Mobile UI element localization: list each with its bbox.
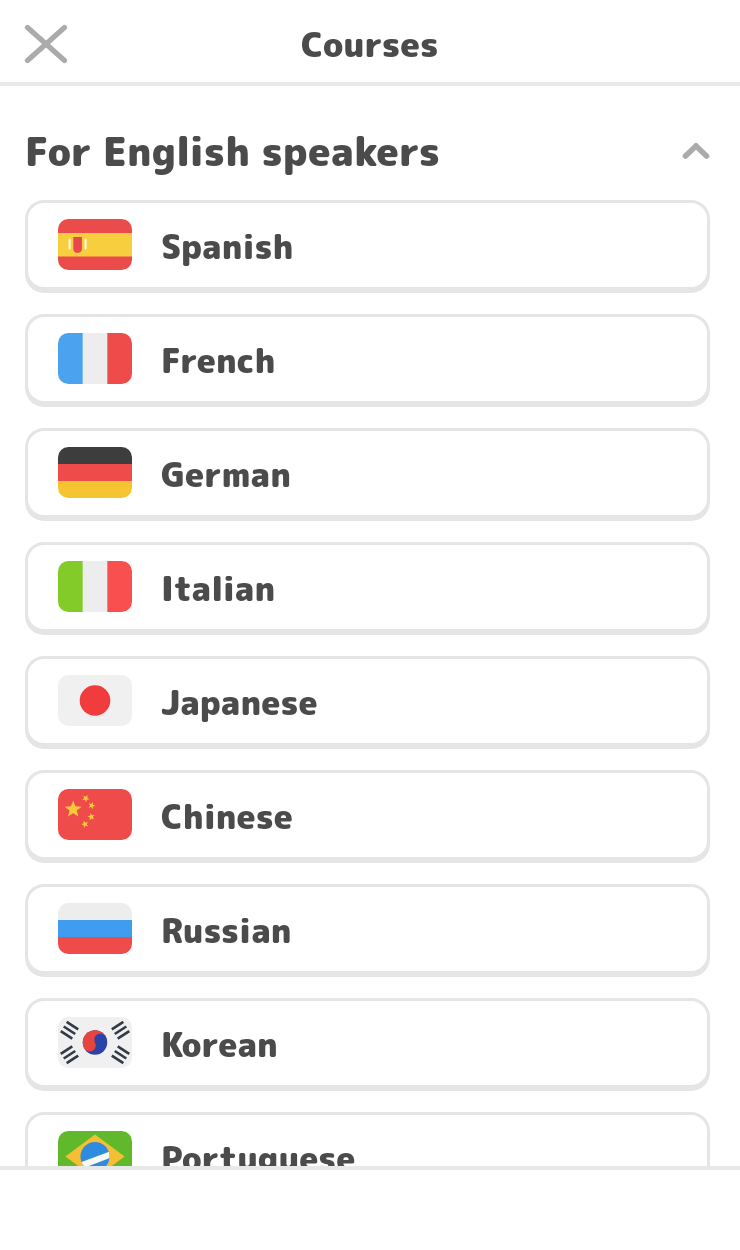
- button[interactable]: German: [25, 428, 710, 521]
- staticText: French: [161, 338, 276, 384]
- button[interactable]: Italian: [25, 542, 710, 635]
- staticText: Spanish: [161, 224, 294, 270]
- staticText: Italian: [161, 566, 276, 612]
- staticText: Korean: [161, 1022, 278, 1068]
- other: Collapse section: [674, 129, 718, 173]
- button[interactable]: Russian: [25, 884, 710, 977]
- staticText: Japanese: [161, 680, 318, 726]
- staticText: Courses: [301, 20, 439, 67]
- staticText: German: [161, 452, 292, 498]
- staticText: Chinese: [161, 794, 293, 840]
- button[interactable]: Close: [12, 9, 80, 77]
- button[interactable]: Japanese: [25, 656, 710, 749]
- button[interactable]: Spanish: [25, 200, 710, 293]
- button[interactable]: Portuguese: [25, 1112, 710, 1166]
- button[interactable]: For English speakers: [0, 86, 740, 200]
- button[interactable]: Korean: [25, 998, 710, 1091]
- staticText: Portuguese: [161, 1136, 356, 1166]
- staticText: Russian: [161, 908, 292, 954]
- button[interactable]: French: [25, 314, 710, 407]
- staticText: For English speakers: [25, 124, 440, 178]
- button[interactable]: Chinese: [25, 770, 710, 863]
